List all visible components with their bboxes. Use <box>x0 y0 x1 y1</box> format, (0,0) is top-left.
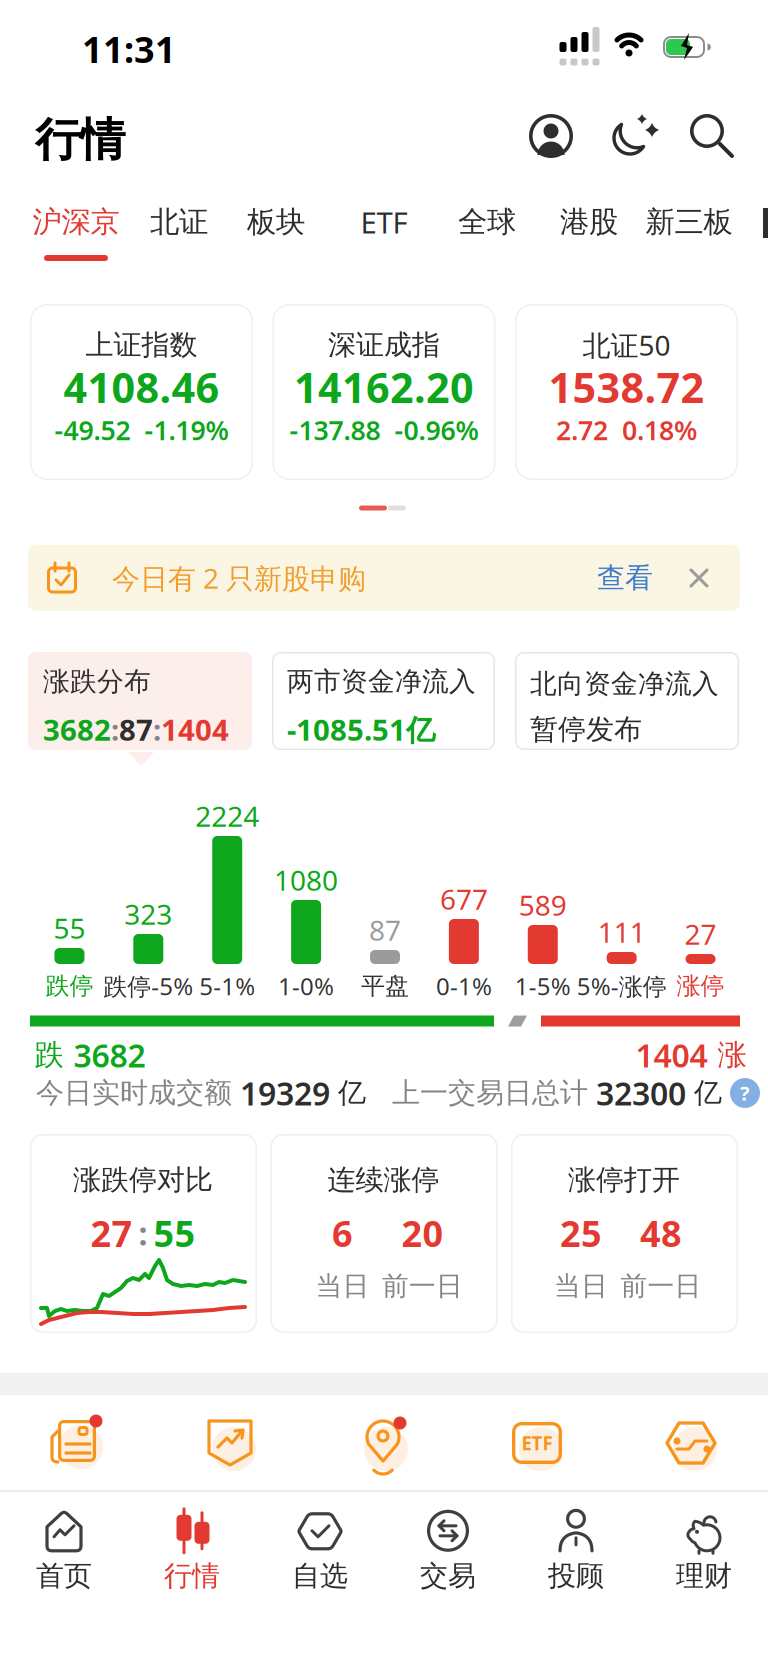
staticText: 55 <box>153 1209 195 1257</box>
staticText: 1404 <box>635 1034 707 1076</box>
button[interactable]: 交易 <box>420 1507 476 1593</box>
staticText: 27 <box>90 1209 132 1257</box>
staticText: ETF <box>521 1431 552 1455</box>
staticText: 1080 <box>274 861 338 899</box>
staticText: 全球 <box>458 204 516 240</box>
button[interactable]: 板块 <box>247 204 305 240</box>
button[interactable] <box>49 1415 105 1471</box>
staticText: 11:31 <box>82 25 176 73</box>
staticText: 深证成指 <box>328 328 440 362</box>
staticText: 1-0% <box>278 970 334 1002</box>
staticText: 交易 <box>420 1559 476 1593</box>
staticText: 48 <box>640 1209 682 1257</box>
button[interactable] <box>690 114 734 158</box>
staticText: : <box>111 710 119 749</box>
button[interactable]: 涨跌停对比 <box>30 1134 257 1333</box>
staticText: 沪深京 <box>32 204 119 240</box>
staticText: 1-5% <box>515 970 571 1002</box>
button[interactable]: 今日有 2 只新股申购 <box>28 545 740 611</box>
button[interactable]: 涨停打开 <box>511 1134 738 1333</box>
staticText: 涨停打开 <box>568 1163 680 1197</box>
button[interactable]: 首页 <box>36 1507 92 1593</box>
staticText: 亿 <box>338 1076 366 1110</box>
staticText: 当日 <box>554 1270 608 1302</box>
staticText: 板块 <box>247 204 305 240</box>
button[interactable]: ETF <box>360 202 407 241</box>
button[interactable] <box>529 114 573 158</box>
button[interactable]: 北向资金净流入 <box>515 652 739 750</box>
staticText: 2224 <box>195 797 259 835</box>
staticText: 行情 <box>35 112 125 168</box>
button[interactable] <box>202 1415 258 1471</box>
staticText: 投顾 <box>548 1559 604 1593</box>
staticText: 32300 <box>596 1072 686 1114</box>
staticText: 北向资金净流入 <box>530 667 719 700</box>
button[interactable]: 连续涨停 <box>270 1134 497 1333</box>
staticText: 涨跌停对比 <box>73 1163 213 1197</box>
staticText: ? <box>740 1080 750 1106</box>
staticText: 55 <box>53 909 85 947</box>
staticText: 跌停 <box>45 971 93 1001</box>
staticText: 87 <box>119 710 153 749</box>
staticText: 上证指数 <box>85 328 197 362</box>
button[interactable]: ETF <box>509 1415 565 1471</box>
button[interactable]: 涨跌分布 <box>28 652 252 750</box>
button[interactable]: 新三板 <box>645 204 732 240</box>
staticText: 涨停 <box>677 971 725 1001</box>
button[interactable] <box>610 112 658 160</box>
staticText: 5%-涨停 <box>577 970 667 1002</box>
staticText: 2.72 0.18% <box>556 412 697 448</box>
staticText: 87 <box>369 911 401 949</box>
staticText: 今日有 2 只新股申购 <box>112 559 366 597</box>
staticText: 14162.20 <box>294 360 474 414</box>
staticText: 理财 <box>676 1559 732 1593</box>
staticText: 今日实时成交额 <box>36 1076 232 1110</box>
button[interactable]: 深证成指 <box>272 304 495 480</box>
staticText: 前一日 <box>620 1270 701 1302</box>
staticText: -49.52 -1.19% <box>54 412 228 448</box>
staticText: 行情 <box>164 1559 220 1593</box>
button[interactable]: 港股 <box>560 204 618 240</box>
button[interactable]: 理财 <box>676 1507 732 1593</box>
button[interactable] <box>663 1415 719 1471</box>
staticText: 亿 <box>694 1076 722 1110</box>
button[interactable]: 行情 <box>164 1507 220 1593</box>
staticText: 5-1% <box>199 970 255 1002</box>
button[interactable]: 沪深京 <box>32 204 119 240</box>
button[interactable]: 投顾 <box>548 1507 604 1593</box>
staticText: 涨 <box>717 1037 746 1073</box>
button[interactable]: 上证指数 <box>30 304 253 480</box>
staticText: 自选 <box>292 1559 348 1593</box>
staticText: 跌 <box>34 1037 63 1073</box>
button[interactable]: 全球 <box>458 204 516 240</box>
staticText: ETF <box>360 202 407 241</box>
staticText: 上一交易日总计 <box>392 1076 588 1110</box>
staticText: 新三板 <box>645 204 732 240</box>
staticText: 323 <box>124 895 172 933</box>
staticText: 连续涨停 <box>327 1163 439 1197</box>
staticText: 677 <box>440 880 488 918</box>
staticText: : <box>138 1212 147 1254</box>
staticText: 当日 <box>315 1270 369 1302</box>
staticText: 111 <box>598 913 646 951</box>
staticText: 暂停发布 <box>530 712 642 747</box>
staticText: 25 <box>560 1209 602 1257</box>
staticText: -1085.51亿 <box>287 710 435 749</box>
staticText: 6 <box>332 1209 353 1257</box>
staticText: : <box>153 710 161 749</box>
staticText: -137.88 -0.96% <box>289 412 478 448</box>
button[interactable] <box>356 1415 412 1471</box>
staticText: 前一日 <box>382 1270 463 1302</box>
button[interactable]: 北证50 <box>515 304 738 480</box>
staticText: 4108.46 <box>63 360 219 414</box>
button[interactable]: 北证 <box>150 204 208 240</box>
button[interactable]: 自选 <box>292 1507 348 1593</box>
staticText: 1538.72 <box>548 360 704 414</box>
button[interactable]: 两市资金净流入 <box>272 652 495 750</box>
staticText: 涨跌分布 <box>43 665 151 698</box>
staticText: 首页 <box>36 1559 92 1593</box>
staticText: 19329 <box>240 1072 330 1114</box>
staticText: 港股 <box>560 204 618 240</box>
staticText: 27 <box>685 915 717 953</box>
staticText: 跌停-5% <box>103 970 193 1002</box>
